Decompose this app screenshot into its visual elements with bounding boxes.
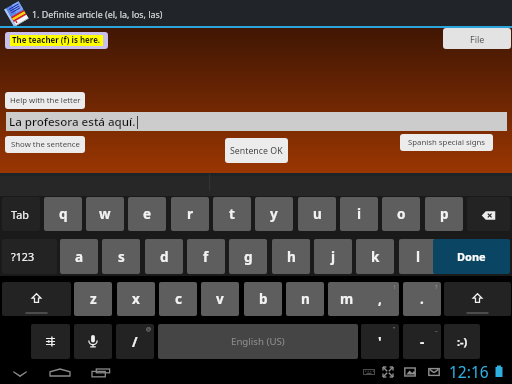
button[interactable]: g [229, 239, 267, 274]
button[interactable]: Backspace [467, 197, 510, 231]
staticText: k [371, 248, 380, 266]
button[interactable]: . [403, 282, 441, 316]
button[interactable]: z [74, 282, 112, 316]
button[interactable]: x [117, 282, 155, 316]
button[interactable]: Screenshot captured [404, 366, 416, 378]
staticText: The teacher (f) is here. [12, 35, 101, 46]
button[interactable]: Show the sentence [5, 136, 85, 153]
button[interactable]: n [286, 282, 324, 316]
button[interactable]: i [340, 197, 378, 231]
staticText: w [99, 205, 111, 223]
button[interactable]: v [201, 282, 239, 316]
staticText: English (US) [231, 335, 285, 348]
staticText: Help with the letter [10, 95, 81, 106]
staticText: e [143, 205, 152, 223]
staticText: y [270, 205, 278, 223]
staticText: Show the sentence [11, 139, 80, 150]
button[interactable]: q [44, 197, 82, 231]
button[interactable]: Voice input [74, 324, 112, 359]
button[interactable]: b [244, 282, 282, 316]
button[interactable]: y [255, 197, 293, 231]
button[interactable]: The teacher (f) is here. [5, 32, 108, 49]
staticText: Spanish special signs [408, 137, 486, 148]
button[interactable]: Home [49, 368, 71, 377]
button[interactable]: m [328, 282, 366, 316]
button[interactable]: Sentence OK [225, 138, 288, 163]
button[interactable]: Hide keyboard [13, 370, 27, 377]
staticText: 12:16 [449, 361, 489, 382]
staticText: u [313, 205, 322, 223]
staticText: n [301, 290, 310, 308]
staticText: . [420, 290, 424, 308]
staticText: x [132, 290, 140, 308]
staticText: d [160, 248, 169, 266]
button[interactable]: - [403, 324, 441, 359]
button[interactable]: New email [428, 366, 440, 378]
button[interactable]: Input settings [31, 324, 70, 359]
staticText: 1. Definite article (el, la, los, las) [32, 8, 163, 20]
staticText: o [397, 205, 406, 223]
staticText: ?123 [11, 249, 35, 264]
button[interactable]: a [60, 239, 98, 274]
button[interactable]: p [425, 197, 463, 231]
button[interactable]: Help with the letter [5, 92, 85, 109]
button[interactable]: r [171, 197, 209, 231]
staticText: ! [394, 283, 396, 290]
button[interactable]: Battery [495, 365, 503, 378]
button[interactable]: ' [361, 324, 399, 359]
staticText: Tab [11, 207, 29, 222]
staticText: m [340, 290, 354, 308]
staticText: File [470, 33, 485, 45]
button[interactable]: ?123 [2, 239, 57, 274]
button[interactable]: Fullscreen [382, 366, 394, 378]
button[interactable]: Tab [2, 197, 40, 231]
staticText: La profesora está aquí. [9, 114, 136, 130]
button[interactable]: s [102, 239, 140, 274]
staticText: @ [146, 325, 151, 332]
button[interactable]: t [213, 197, 251, 231]
staticText: / [132, 333, 138, 351]
button[interactable]: d [145, 239, 183, 274]
button[interactable]: j [314, 239, 352, 274]
staticText: Sentence OK [230, 145, 283, 157]
staticText: j [331, 248, 336, 266]
button[interactable]: k [356, 239, 394, 274]
staticText: v [216, 290, 224, 308]
button[interactable]: :-) [444, 324, 480, 359]
staticText: r [187, 205, 194, 223]
button[interactable]: Recent apps [91, 368, 110, 377]
staticText: _ [435, 325, 438, 332]
button[interactable]: Done [433, 239, 510, 274]
staticText: - [420, 333, 425, 351]
button[interactable]: Shift [444, 282, 511, 316]
button[interactable]: h [272, 239, 310, 274]
staticText: q [59, 205, 68, 223]
button[interactable]: Shift [2, 282, 71, 316]
staticText: Done [457, 249, 486, 264]
button[interactable]: f [187, 239, 225, 274]
button[interactable]: u [298, 197, 336, 231]
staticText: z [90, 290, 97, 308]
button[interactable]: e [128, 197, 166, 231]
button[interactable]: / [116, 324, 154, 359]
staticText: ' [378, 333, 382, 351]
staticText: c [175, 290, 182, 308]
staticText: g [244, 248, 253, 266]
button[interactable]: c [159, 282, 197, 316]
button[interactable]: l [399, 239, 437, 274]
button[interactable]: w [86, 197, 124, 231]
button[interactable]: , [361, 282, 399, 316]
staticText: :-) [457, 334, 468, 349]
button[interactable]: Spanish special signs [400, 134, 493, 151]
button[interactable]: La profesora está aquí. [6, 112, 507, 131]
staticText: f [203, 248, 209, 266]
staticText: a [75, 248, 84, 266]
staticText: , [378, 290, 382, 308]
staticText: i [357, 205, 362, 223]
button[interactable]: Keyboard [363, 366, 375, 378]
button[interactable]: o [382, 197, 420, 231]
staticText: l [416, 248, 421, 266]
button[interactable]: File [443, 28, 511, 49]
button[interactable]: English (US) [158, 324, 358, 359]
staticText: t [229, 205, 235, 223]
